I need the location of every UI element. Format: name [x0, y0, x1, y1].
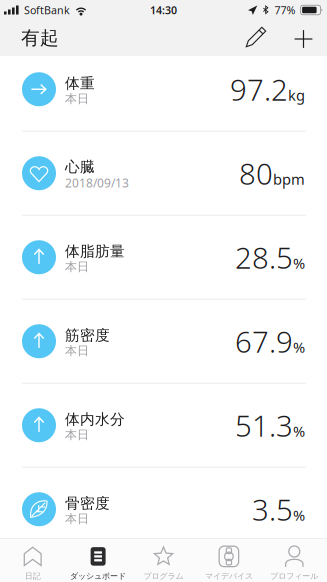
button[interactable]: マイデバイス: [196, 539, 262, 582]
staticText: 本日: [65, 427, 89, 442]
staticText: %: [293, 253, 305, 273]
button[interactable]: 体重: [0, 48, 327, 131]
staticText: 有起: [21, 26, 59, 49]
button[interactable]: 骨密度: [0, 468, 327, 551]
button[interactable]: プログラム: [131, 539, 196, 582]
staticText: 骨密度: [65, 494, 110, 512]
staticText: 体重: [65, 74, 95, 92]
button[interactable]: 日記: [0, 539, 65, 582]
staticText: マイデバイス: [205, 571, 253, 581]
staticText: 77%: [275, 3, 296, 17]
staticText: 97.2: [230, 70, 288, 109]
staticText: 14:30: [150, 3, 177, 17]
staticText: 51.3: [235, 406, 293, 445]
staticText: 本日: [65, 343, 89, 358]
button[interactable]: 体脂肪量: [0, 216, 327, 299]
staticText: %: [293, 421, 305, 441]
staticText: 日記: [25, 571, 41, 581]
button[interactable]: 心臓: [0, 132, 327, 215]
staticText: 体脂肪量: [65, 242, 125, 260]
staticText: SoftBank: [24, 3, 70, 17]
staticText: 28.5: [235, 238, 293, 277]
staticText: ダッシュボード: [70, 571, 126, 581]
staticText: 67.9: [235, 322, 293, 361]
staticText: 80: [239, 154, 273, 193]
staticText: kg: [288, 85, 305, 105]
staticText: 心臓: [65, 158, 95, 176]
staticText: プログラム: [143, 571, 183, 581]
staticText: 2018/09/13: [65, 175, 129, 191]
button[interactable]: 体内水分: [0, 384, 327, 467]
button[interactable]: 筋密度: [0, 300, 327, 383]
staticText: bpm: [273, 169, 305, 189]
button[interactable]: Edit: [228, 21, 285, 55]
staticText: 筋密度: [65, 326, 110, 344]
staticText: プロフィール: [270, 571, 318, 581]
staticText: 本日: [65, 91, 89, 106]
staticText: 本日: [65, 259, 89, 274]
staticText: 3.5: [252, 490, 293, 529]
button[interactable]: Add: [285, 21, 322, 55]
button[interactable]: プロフィール: [262, 539, 327, 582]
staticText: %: [293, 505, 305, 525]
staticText: 本日: [65, 511, 89, 526]
staticText: 体内水分: [65, 410, 125, 428]
staticText: %: [293, 337, 305, 357]
button[interactable]: ダッシュボード: [65, 539, 131, 582]
